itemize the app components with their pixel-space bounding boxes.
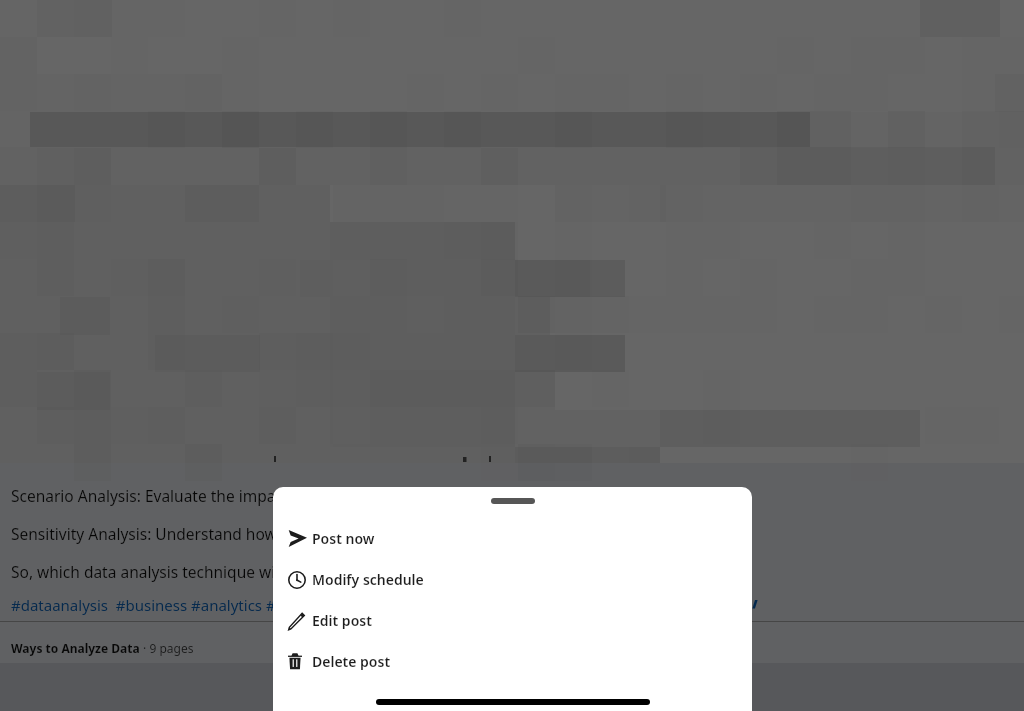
staticText: Delete post (312, 652, 391, 671)
staticText: Post now (312, 529, 375, 548)
button[interactable]: Ways to Analyze Data (11, 640, 194, 656)
button[interactable]: Post now (273, 518, 752, 559)
staticText: #dataanalysis #business #analytics #data… (11, 595, 431, 615)
button[interactable]: Drag handle (273, 498, 752, 504)
button[interactable]: Close menu (0, 0, 1024, 711)
button[interactable]: Edit post (273, 600, 752, 641)
staticText: Sensitivity Analysis: Understand how a c… (11, 523, 477, 544)
staticText: So, which data analysis technique will y… (11, 561, 472, 582)
button[interactable]: Delete post (273, 641, 752, 682)
staticText: · 9 pages (140, 640, 194, 656)
staticText: Scenario Analysis: Evaluate the impact o… (11, 485, 457, 506)
staticText: Ways to Analyze Data (11, 640, 140, 656)
staticText: Edit post (312, 611, 372, 630)
button[interactable]: Modify schedule (273, 559, 752, 600)
staticText: Modify schedule (312, 570, 424, 589)
